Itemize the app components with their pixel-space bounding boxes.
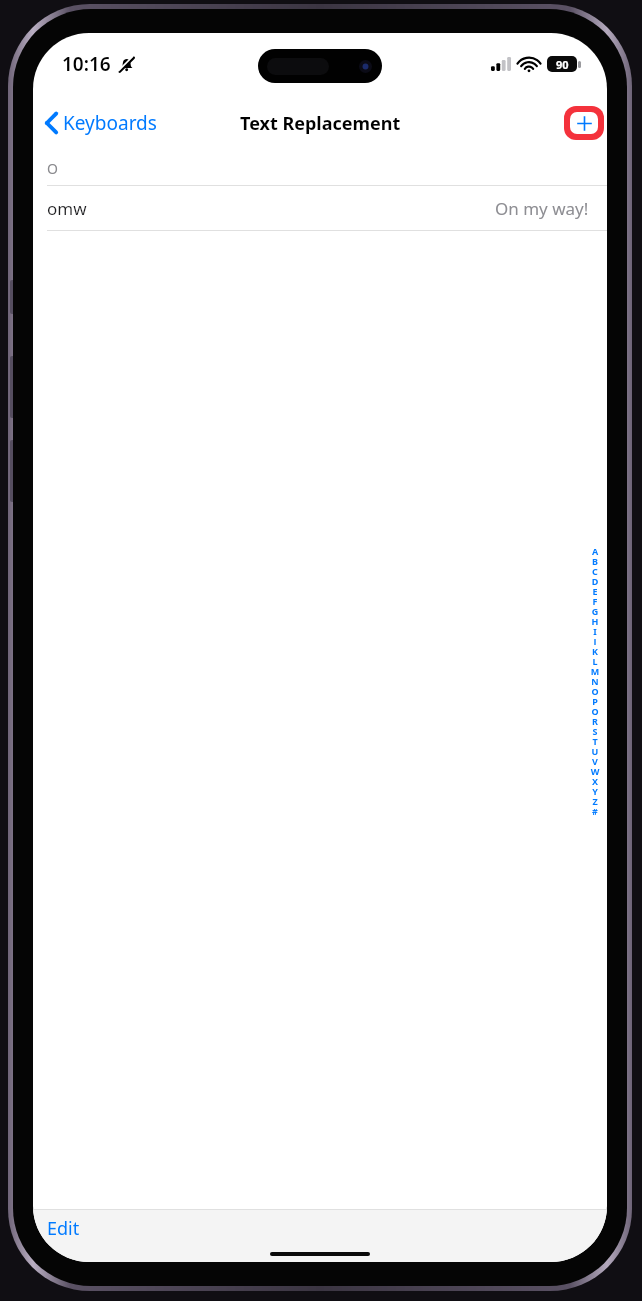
staticText: omw: [47, 197, 87, 220]
button[interactable]: Keyboards: [33, 101, 165, 145]
staticText: #: [587, 805, 603, 815]
staticText: M: [587, 665, 603, 675]
button[interactable]: Add text replacement: [564, 106, 604, 140]
staticText: I: [587, 625, 603, 635]
staticText: H: [587, 615, 603, 625]
staticText: 10:16: [62, 51, 111, 77]
staticText: F: [587, 595, 603, 605]
staticText: N: [587, 675, 603, 685]
staticText: S: [587, 725, 603, 735]
staticText: X: [587, 775, 603, 785]
staticText: P: [587, 695, 603, 705]
staticText: 90: [556, 57, 569, 72]
staticText: Keyboards: [63, 110, 157, 136]
staticText: J: [587, 635, 603, 645]
staticText: O: [587, 685, 603, 695]
staticText: K: [587, 645, 603, 655]
button[interactable]: Edit: [33, 1210, 94, 1246]
staticText: A: [587, 545, 603, 555]
staticText: L: [587, 655, 603, 665]
staticText: Q: [587, 705, 603, 715]
staticText: C: [587, 565, 603, 575]
staticText: D: [587, 575, 603, 585]
staticText: U: [587, 745, 603, 755]
button[interactable]: omw: [33, 186, 607, 230]
staticText: W: [587, 765, 603, 775]
staticText: Text Replacement: [240, 111, 401, 136]
staticText: Z: [587, 795, 603, 805]
staticText: V: [587, 755, 603, 765]
staticText: G: [587, 605, 603, 615]
staticText: Y: [587, 785, 603, 795]
staticText: E: [587, 585, 603, 595]
staticText: B: [587, 555, 603, 565]
staticText: Edit: [47, 1216, 80, 1241]
staticText: T: [587, 735, 603, 745]
staticText: O: [47, 159, 58, 178]
button[interactable]: Alphabet index: [587, 545, 603, 815]
staticText: R: [587, 715, 603, 725]
staticText: On my way!: [495, 197, 589, 220]
